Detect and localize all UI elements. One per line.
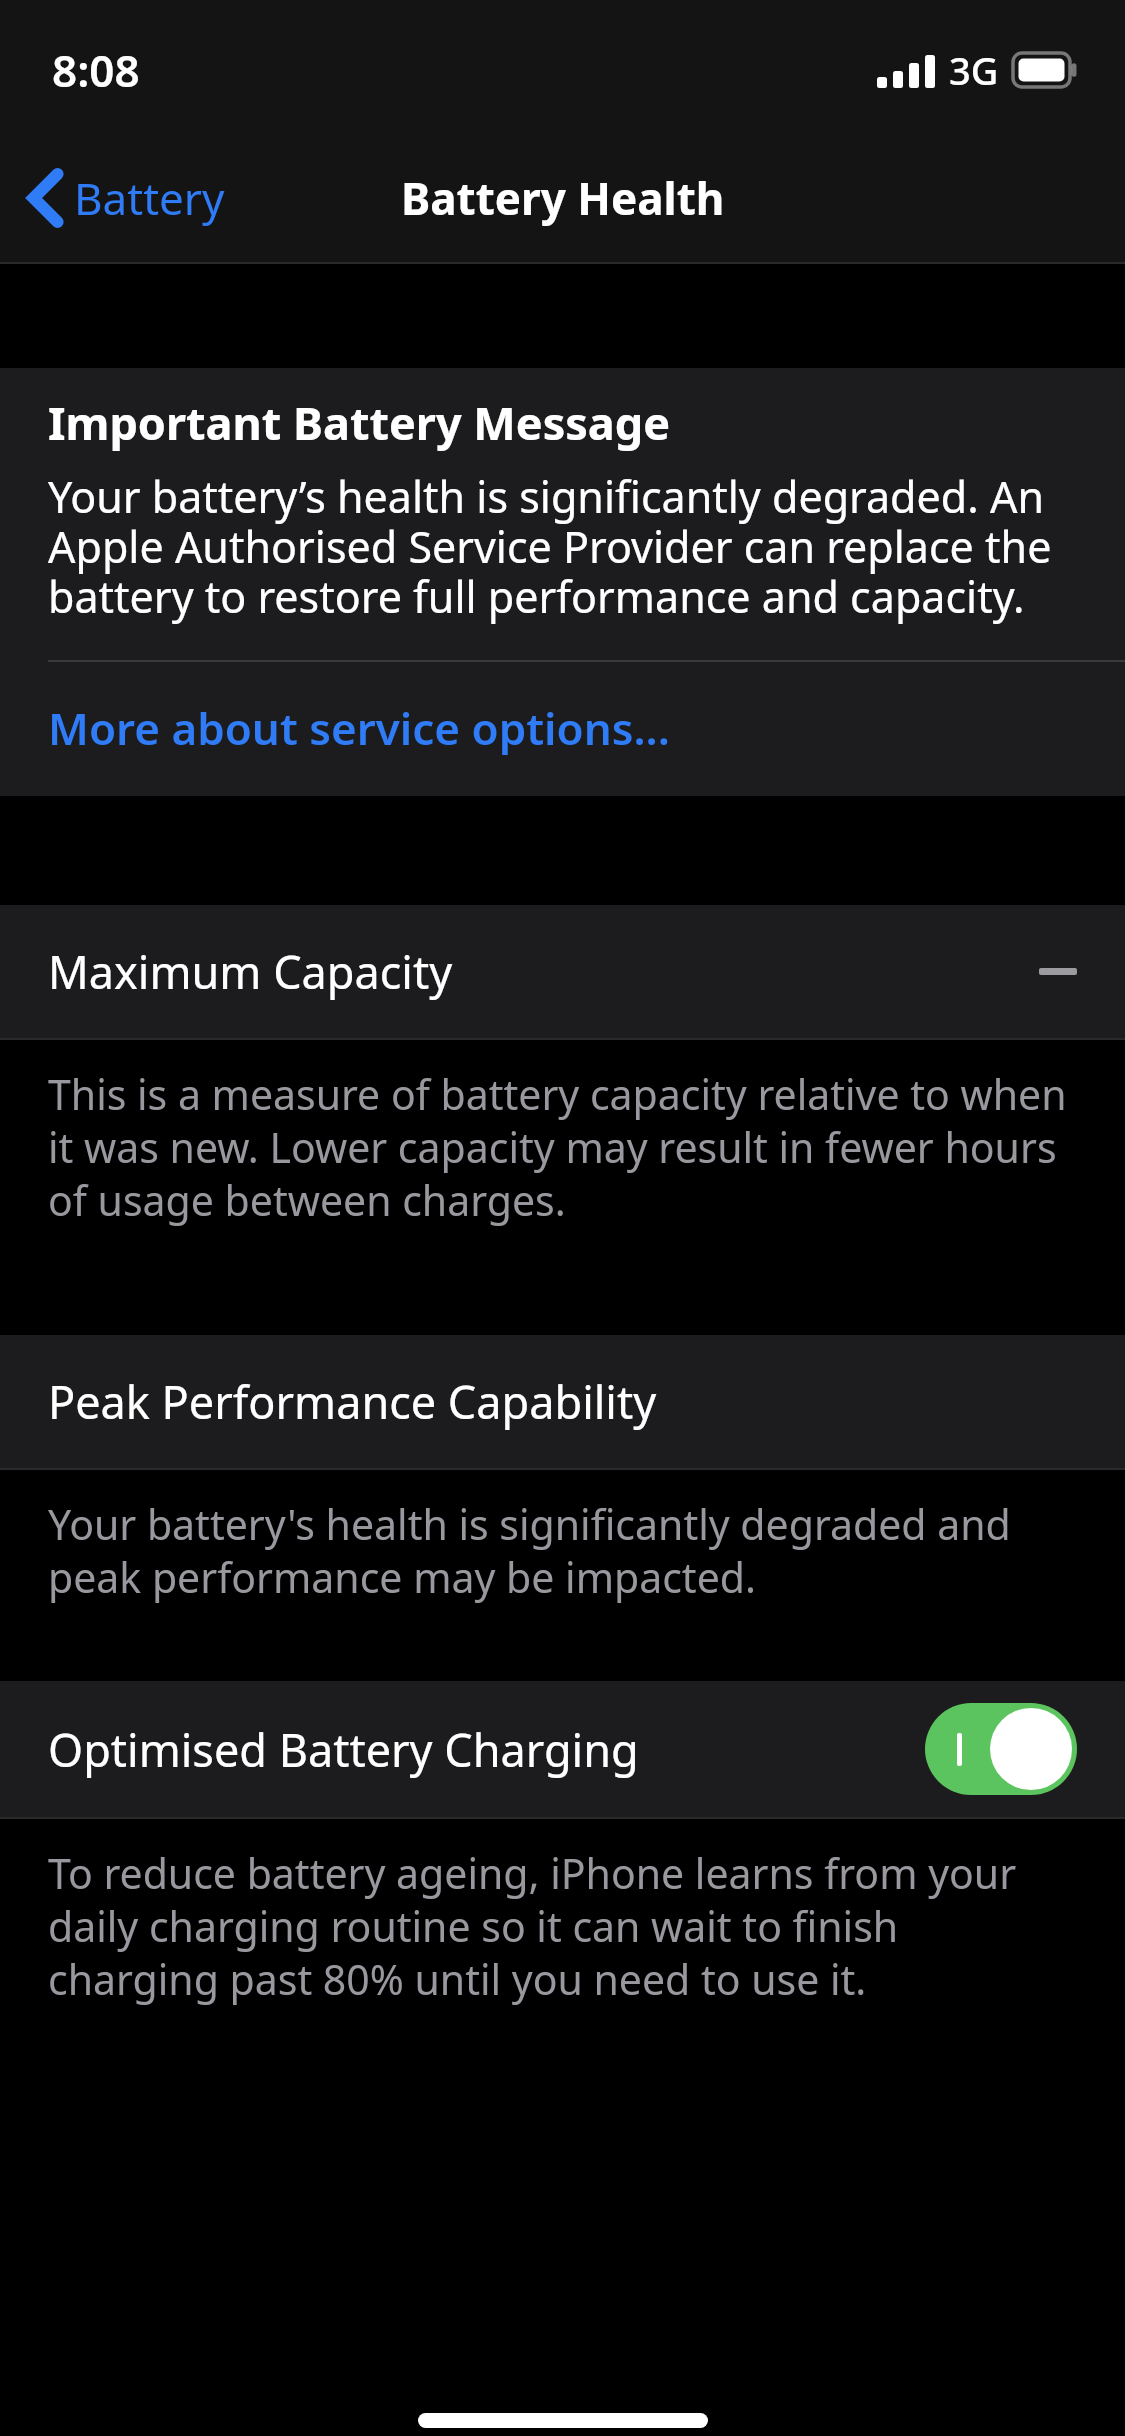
staticText: More about service options... xyxy=(48,698,670,758)
staticText: This is a measure of battery capacity re… xyxy=(48,1066,1073,1228)
button[interactable]: Optimised Battery Charging toggle, on xyxy=(925,1703,1077,1795)
staticText: Battery xyxy=(74,168,225,228)
staticText: To reduce battery ageing, iPhone learns … xyxy=(48,1845,1073,2007)
button[interactable]: Battery xyxy=(0,152,249,244)
staticText: 3G xyxy=(949,44,999,96)
staticText: Maximum Capacity xyxy=(48,941,453,1002)
staticText: Your battery’s health is significantly d… xyxy=(48,467,1079,626)
staticText: Important Battery Message xyxy=(48,392,671,453)
button[interactable]: Peak Performance Capability xyxy=(0,1335,1125,1468)
staticText: Optimised Battery Charging xyxy=(48,1719,639,1780)
staticText: Peak Performance Capability xyxy=(48,1371,657,1432)
staticText: Your battery's health is significantly d… xyxy=(48,1496,1073,1605)
staticText: 8:08 xyxy=(52,40,140,100)
button[interactable]: More about service options... xyxy=(0,662,1125,796)
button[interactable]: Maximum Capacity xyxy=(0,905,1125,1038)
staticText: Battery Health xyxy=(401,168,725,228)
